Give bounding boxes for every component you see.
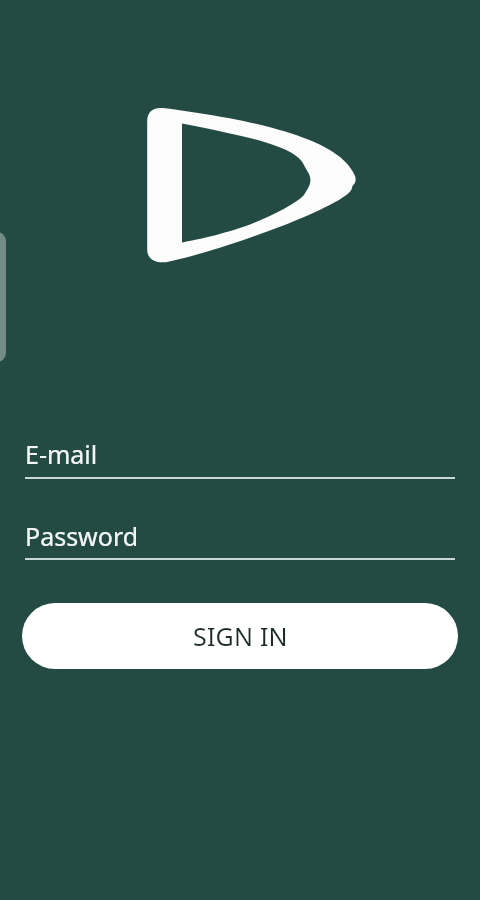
button[interactable]: Password: [25, 519, 455, 560]
staticText: Password: [25, 519, 139, 553]
staticText: SIGN IN: [193, 619, 288, 653]
button[interactable]: Open navigation drawer: [0, 232, 6, 362]
staticText: E-mail: [25, 437, 98, 471]
button[interactable]: E-mail: [25, 437, 455, 479]
button[interactable]: SIGN IN: [22, 603, 458, 669]
